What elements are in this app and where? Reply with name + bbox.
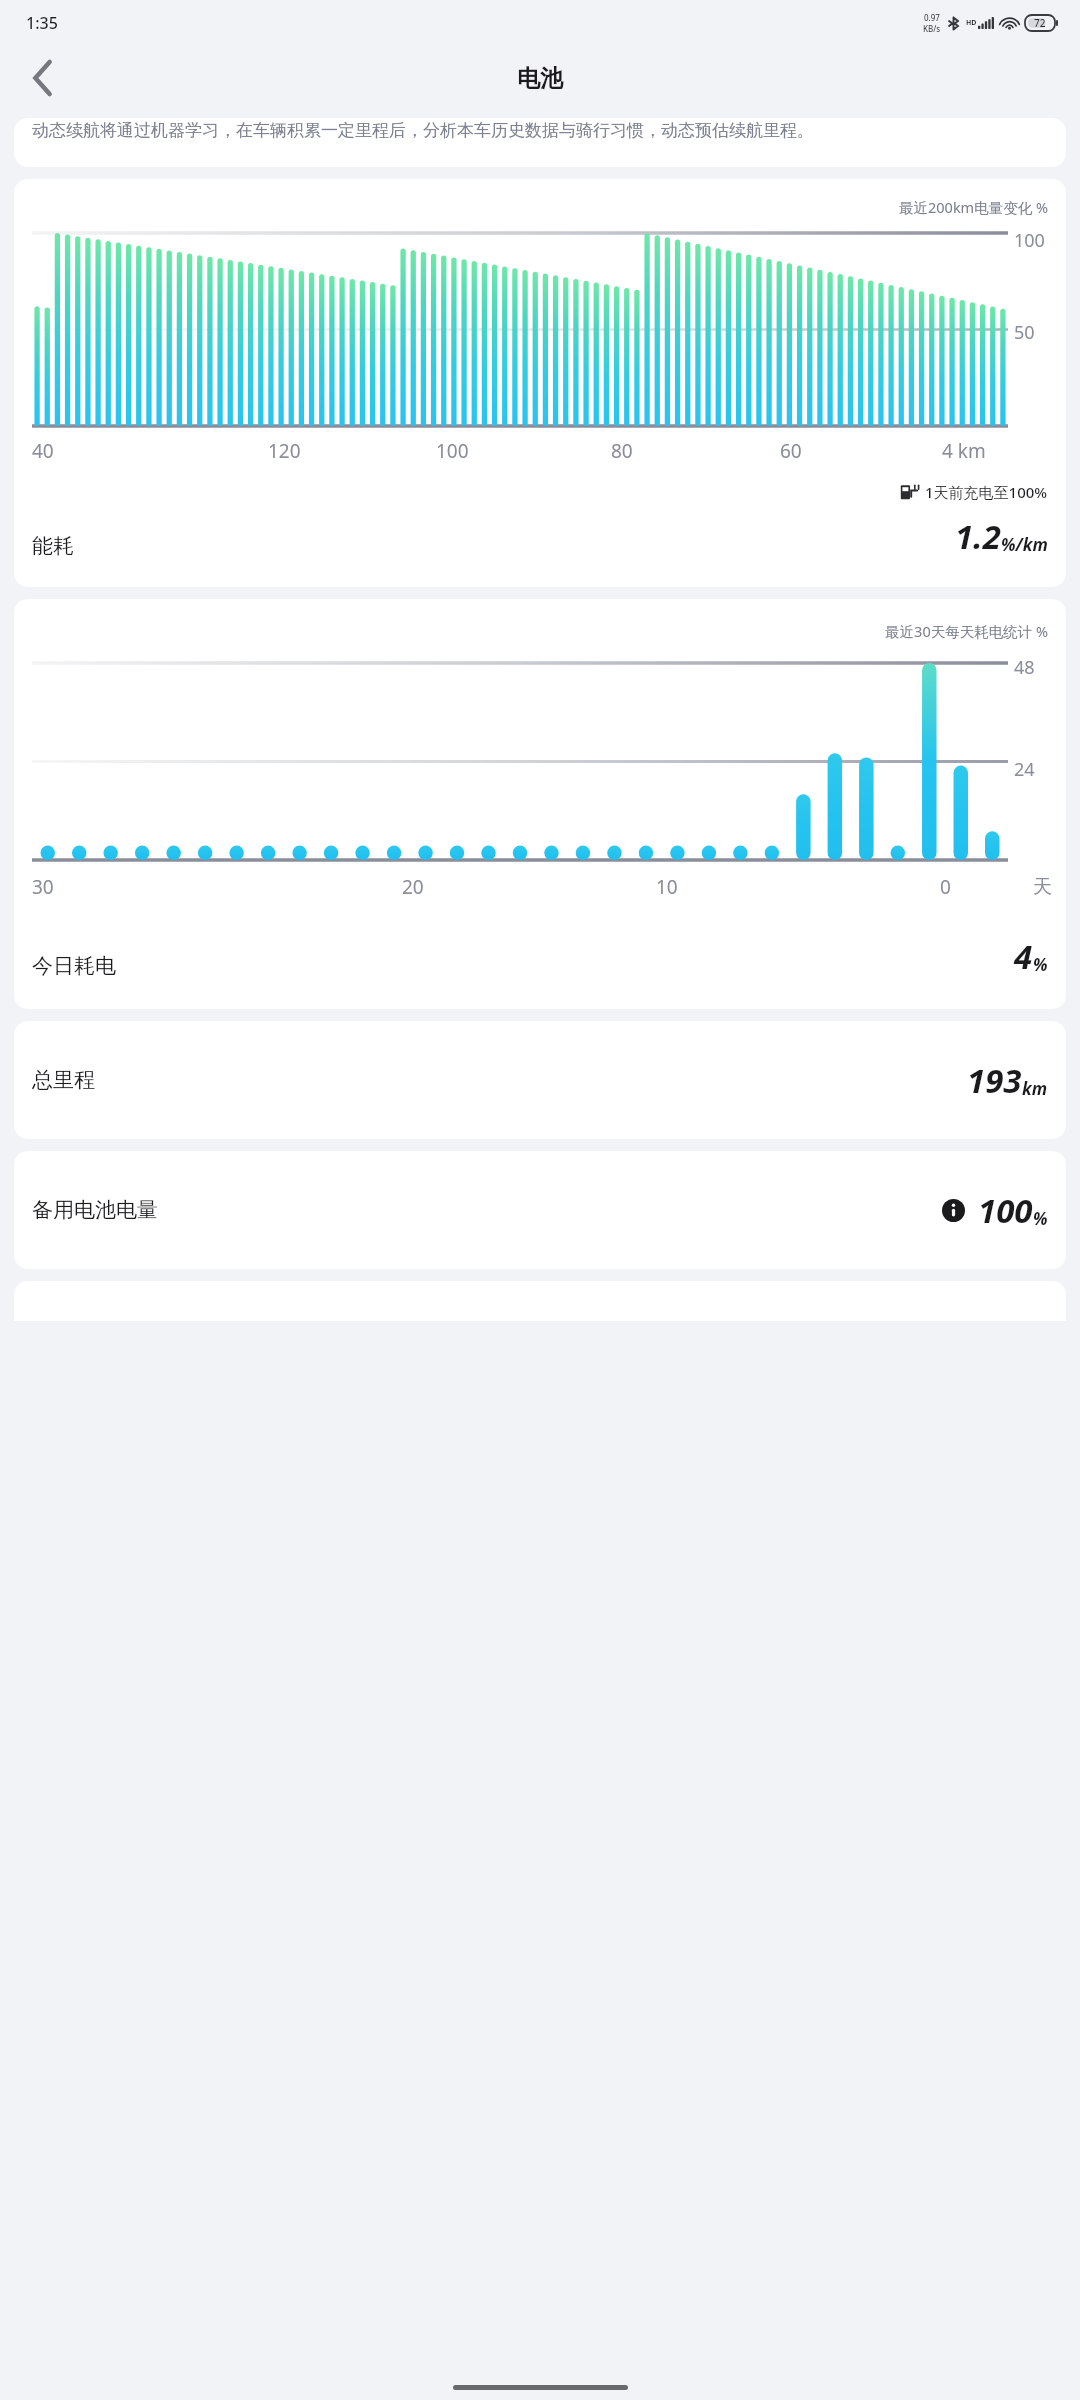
button[interactable]: 备用电池电量 [14, 1151, 1066, 1269]
button[interactable]: 最近30天每天耗电统计 % [14, 599, 1066, 1009]
staticText: % [1033, 1207, 1048, 1230]
staticText: 1.2 [955, 514, 1001, 559]
staticText: 最近200km电量变化 % [14, 197, 1048, 217]
staticText: 4 km [942, 438, 986, 464]
staticText: 40 [32, 438, 54, 464]
staticText: 100 [1014, 228, 1045, 253]
staticText: 能耗 [32, 533, 74, 559]
staticText: 24 [1014, 757, 1035, 782]
staticText: km [1022, 1077, 1048, 1100]
staticText: 动态续航将通过机器学习，在车辆积累一定里程后，分析本车历史数据与骑行习惯，动态预… [32, 120, 814, 141]
button[interactable]: 总里程 [14, 1021, 1066, 1139]
staticText: 20 [402, 874, 424, 900]
staticText: 80 [611, 438, 633, 464]
staticText: KB/s [923, 23, 941, 34]
staticText: HD [966, 18, 977, 28]
staticText: 100 [436, 438, 469, 464]
staticText: 60 [780, 438, 802, 464]
staticText: 193 [967, 1058, 1022, 1103]
staticText: 备用电池电量 [32, 1197, 158, 1223]
staticText: 1天前充电至100% [925, 482, 1048, 502]
staticText: 30 [32, 874, 54, 900]
staticText: %/km [1001, 533, 1048, 556]
staticText: % [1033, 953, 1048, 976]
staticText: 电池 [517, 64, 563, 93]
button[interactable]: Info [938, 1195, 968, 1225]
staticText: 4 [1014, 934, 1033, 979]
staticText: 48 [1014, 655, 1035, 680]
staticText: 天 [1033, 875, 1052, 899]
staticText: 100 [978, 1188, 1033, 1233]
staticText: 最近30天每天耗电统计 % [14, 621, 1048, 641]
staticText: 今日耗电 [32, 953, 116, 979]
staticText: 72 [1034, 16, 1046, 30]
staticText: 120 [268, 438, 301, 464]
button[interactable]: 动态续航将通过机器学习，在车辆积累一定里程后，分析本车历史数据与骑行习惯，动态预… [14, 118, 1066, 167]
staticText: 10 [656, 874, 678, 900]
button[interactable]: Back [14, 50, 70, 106]
staticText: 0.97 [924, 12, 940, 23]
staticText: 50 [1014, 320, 1035, 345]
staticText: 0 [940, 874, 951, 900]
staticText: 1:35 [26, 12, 58, 34]
button[interactable]: 最近200km电量变化 % [14, 179, 1066, 587]
staticText: 总里程 [32, 1067, 95, 1093]
